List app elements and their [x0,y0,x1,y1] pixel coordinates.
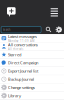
staticText: All conversations [8,42,38,47]
button[interactable]: New message [7,7,16,17]
button[interactable]: Conversations [51,7,58,16]
button[interactable]: Export Journal list [0,67,64,75]
button[interactable]: Latest messages [0,34,64,42]
button[interactable]: Direct Campaign [0,59,64,67]
staticText: Monday 11:09 AM [8,39,34,43]
staticText: Backup Journal [8,76,34,82]
button[interactable]: All conversations [0,42,64,51]
button[interactable]: Settings [56,27,61,32]
button[interactable]: Backup Journal [0,75,64,83]
staticText: Direct Campaign [8,60,38,65]
button[interactable]: Library [0,92,64,100]
staticText: Library [8,93,21,98]
staticText: Latest messages [8,34,37,39]
button[interactable]: Change settings [0,83,64,92]
staticText: Starred [8,52,21,57]
button[interactable]: Starred [0,51,64,59]
staticText: Change settings [8,85,35,90]
staticText: Export Journal list [8,68,38,74]
staticText: Search [3,28,11,31]
button[interactable]: Search [46,27,51,32]
staticText: All threads [8,47,23,51]
